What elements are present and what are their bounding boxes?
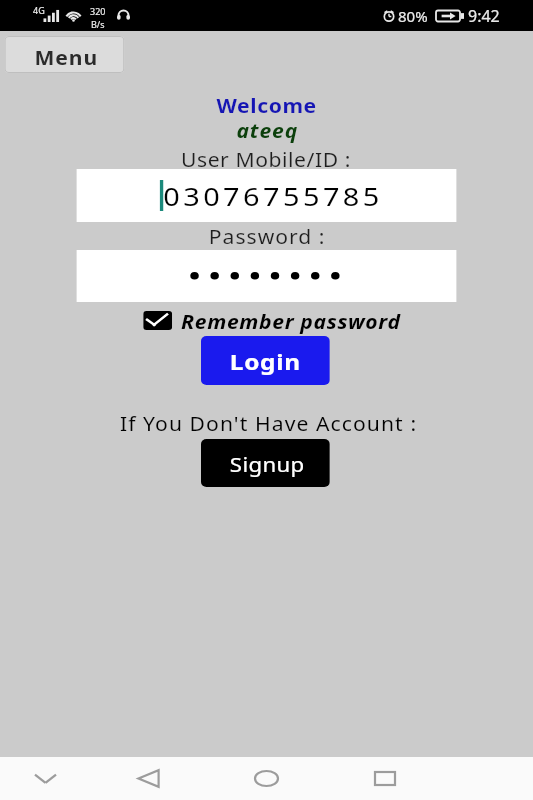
- button[interactable]: Login: [201, 336, 330, 385]
- button[interactable]: 03076755785: [77, 169, 456, 222]
- button[interactable]: Menu: [4, 36, 124, 73]
- button[interactable]: Back: [122, 757, 176, 800]
- button[interactable]: Hide keyboard: [18, 757, 72, 800]
- staticText: B/s: [91, 18, 105, 30]
- staticText: ateeq: [236, 118, 299, 144]
- button[interactable]: Signup: [201, 439, 330, 487]
- staticText: 9:42: [468, 5, 500, 27]
- staticText: Signup: [230, 451, 305, 478]
- staticText: Password :: [209, 224, 326, 250]
- button[interactable]: Home: [239, 757, 293, 800]
- staticText: Menu: [34, 45, 99, 71]
- staticText: Welcome: [216, 93, 317, 119]
- staticText: 03076755785: [163, 178, 383, 213]
- staticText: User Mobile/ID :: [181, 147, 351, 173]
- staticText: Login: [230, 346, 301, 376]
- staticText: 320: [90, 5, 106, 17]
- staticText: If You Don't Have Account :: [120, 411, 417, 437]
- button[interactable]: Remember password: [143, 311, 172, 330]
- staticText: 80%: [398, 6, 428, 26]
- button[interactable]: [77, 250, 456, 302]
- staticText: 4G: [33, 4, 45, 16]
- staticText: Remember password: [181, 309, 401, 335]
- button[interactable]: Recents: [358, 757, 412, 800]
